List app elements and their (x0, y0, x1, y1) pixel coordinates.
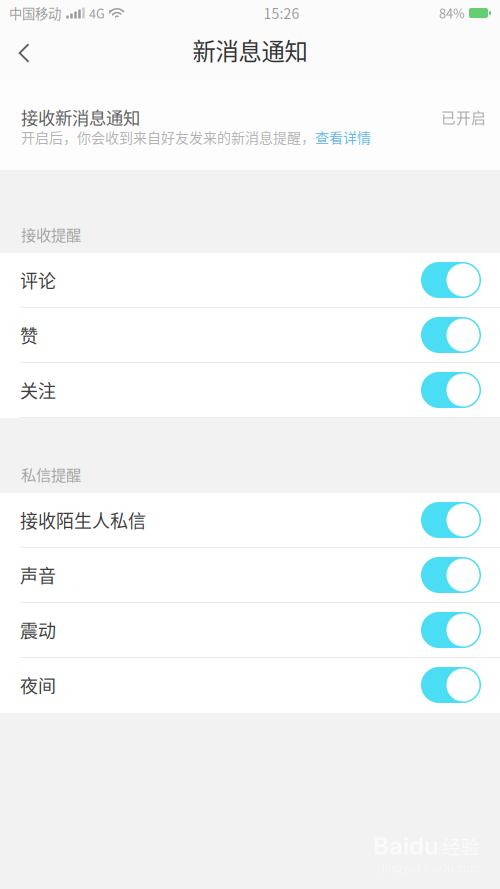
staticText: 查看详情 (315, 127, 371, 147)
button[interactable]: 接收陌生人私信 (0, 493, 500, 548)
staticText: 开启后，你会收到来自好友发来的新消息提醒， (21, 127, 315, 147)
staticText: 赞 (20, 322, 38, 348)
button[interactable]: 夜间 (0, 658, 500, 713)
staticText: 中国移动 (9, 3, 61, 23)
staticText: 夜间 (20, 672, 56, 698)
staticText: 接收提醒 (21, 223, 81, 245)
staticText: 15:26 (263, 3, 299, 23)
staticText: 84% (439, 4, 465, 22)
staticText: 已开启 (441, 106, 486, 128)
button[interactable]: 关注 (0, 363, 500, 418)
staticText: 关注 (20, 377, 56, 403)
button[interactable]: 赞 (0, 308, 500, 363)
button[interactable]: 震动 (0, 603, 500, 658)
staticText: 声音 (20, 562, 56, 588)
button[interactable]: 接收新消息通知 (0, 80, 500, 170)
staticText: 4G (89, 4, 105, 22)
staticText: 私信提醒 (21, 463, 81, 485)
staticText: 接收新消息通知 (21, 104, 140, 130)
button[interactable]: 声音 (0, 548, 500, 603)
button[interactable]: 评论 (0, 253, 500, 308)
staticText: 新消息通知 (192, 33, 307, 67)
staticText: 震动 (20, 617, 56, 643)
staticText: 评论 (20, 267, 56, 293)
button[interactable]: 返回 (0, 26, 58, 80)
staticText: 接收陌生人私信 (20, 507, 146, 533)
staticText: Baidu (373, 831, 438, 860)
